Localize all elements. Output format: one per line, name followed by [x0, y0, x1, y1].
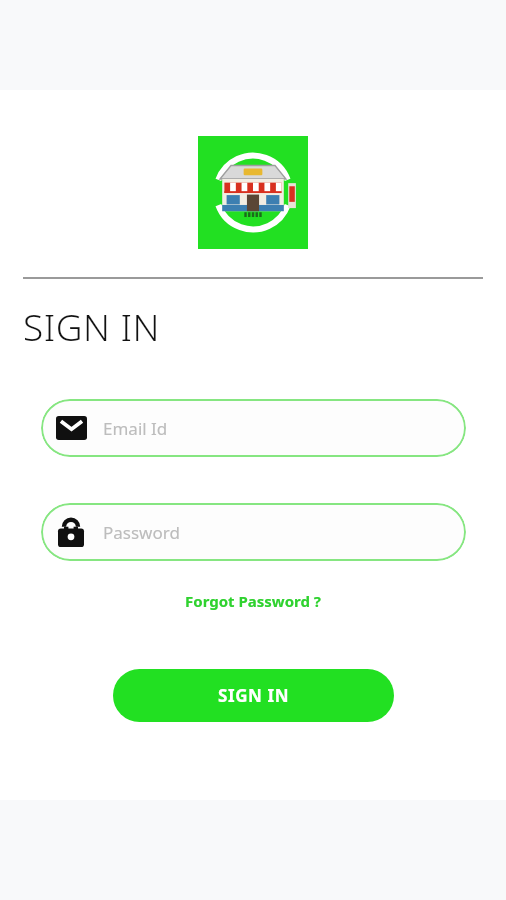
button[interactable]: Password [41, 503, 466, 561]
staticText: Forgot Password ? [185, 591, 321, 611]
staticText: Password [103, 521, 180, 544]
other: eCart logo [198, 136, 308, 249]
button[interactable]: Email [41, 399, 466, 457]
staticText: SIGN IN [218, 684, 290, 707]
button[interactable]: SIGN IN [113, 669, 394, 722]
staticText: Email Id [103, 417, 168, 440]
other: Email [55, 412, 87, 444]
button[interactable]: Forgot Password ? [177, 587, 329, 615]
staticText: SIGN IN [23, 301, 161, 351]
other: Password [55, 516, 87, 548]
